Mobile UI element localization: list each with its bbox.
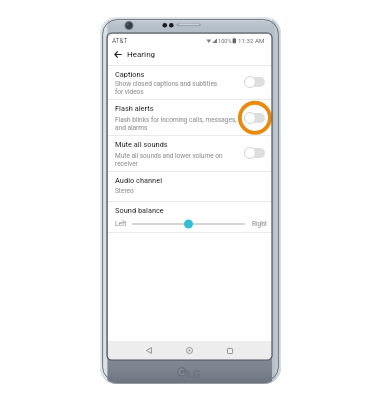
button[interactable] (108, 135, 272, 172)
staticText: Right (252, 220, 267, 228)
staticText: Stereo (115, 187, 134, 195)
button[interactable]: Toggle switch (244, 76, 265, 88)
button[interactable]: Recent apps (221, 341, 238, 360)
staticText: Left (115, 220, 127, 228)
staticText: Audio channel (115, 176, 163, 185)
button[interactable] (108, 201, 272, 233)
staticText: Hearing (127, 50, 156, 59)
button[interactable]: Toggle switch (244, 147, 265, 159)
staticText: 100% (218, 38, 232, 45)
button[interactable] (108, 65, 272, 99)
staticText: 11:32 AM (238, 37, 265, 44)
staticText: AT&T (112, 37, 128, 45)
staticText: Flash alerts (115, 104, 154, 113)
staticText: Mute all sounds and lower volume on rece… (115, 152, 223, 168)
staticText: Mute all sounds (115, 140, 168, 149)
staticText: LG (187, 367, 201, 380)
button[interactable]: Toggle switch (244, 112, 265, 124)
button[interactable] (108, 99, 272, 135)
staticText: Show closed captions and subtitles for v… (115, 80, 218, 96)
button[interactable] (108, 171, 272, 201)
staticText: Sound balance (115, 206, 164, 215)
staticText: Captions (115, 70, 145, 79)
button[interactable]: Back (140, 341, 157, 360)
staticText: Flash blinks for incoming calls, message… (115, 116, 237, 132)
button[interactable]: Home (181, 341, 198, 360)
button[interactable]: Back (111, 48, 124, 61)
